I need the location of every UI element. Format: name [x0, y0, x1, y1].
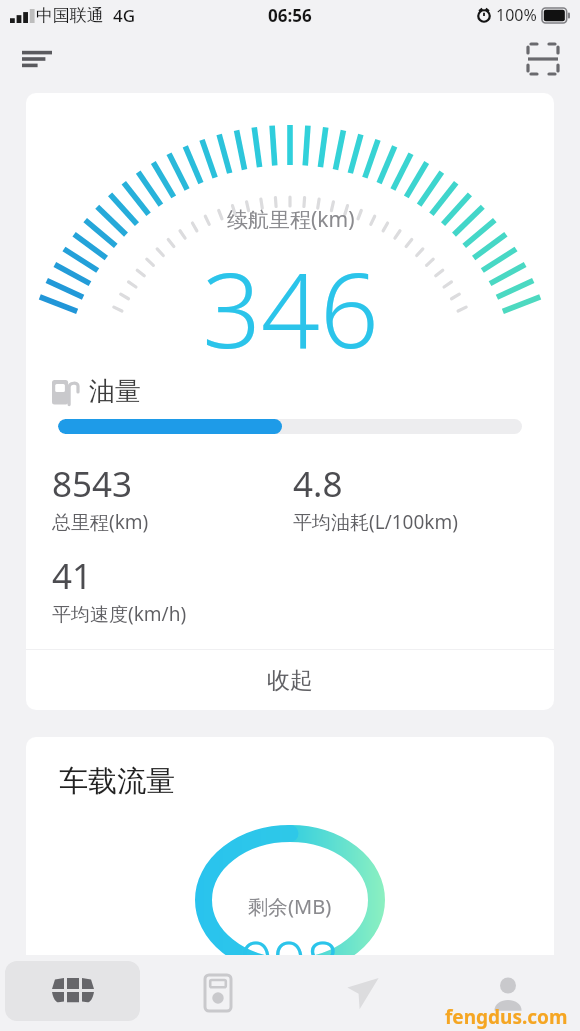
staticText: 续航里程(km) [227, 205, 355, 234]
staticText: 中国联通 [36, 5, 104, 26]
staticText: fengdus.com [445, 1004, 568, 1030]
staticText: 平均油耗(L/100km) [293, 509, 458, 535]
button[interactable]: Menu [14, 36, 60, 82]
staticText: 平均速度(km/h) [52, 601, 187, 627]
staticText: 346 [202, 238, 379, 375]
staticText: 998 [240, 922, 340, 975]
staticText: 41 [52, 552, 93, 600]
staticText: 车载流量 [59, 763, 175, 800]
staticText: 剩余(MB) [248, 893, 332, 920]
staticText: 06:56 [268, 4, 312, 27]
button[interactable]: 收起 [26, 650, 554, 710]
button[interactable]: Scan QR code [520, 36, 566, 82]
staticText: 100% [496, 4, 537, 26]
staticText: 油量 [89, 375, 141, 408]
staticText: 4G [113, 4, 136, 27]
staticText: 总里程(km) [52, 509, 149, 535]
button[interactable]: Media [145, 955, 290, 1031]
button[interactable]: Profile [435, 955, 580, 1031]
staticText: 收起 [267, 666, 313, 695]
staticText: 8543 [52, 460, 133, 508]
button[interactable]: Navigation [290, 955, 435, 1031]
button[interactable]: Car [5, 961, 140, 1021]
staticText: 4.8 [293, 460, 343, 508]
